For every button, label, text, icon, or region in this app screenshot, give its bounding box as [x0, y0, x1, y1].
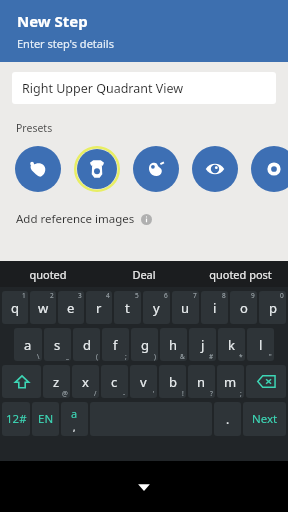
staticText: # — [209, 352, 214, 361]
button[interactable]: s — [44, 328, 71, 361]
staticText: _ — [66, 352, 69, 361]
staticText: New Step — [17, 11, 88, 31]
button[interactable]: Add reference images — [16, 211, 152, 227]
staticText: Deal — [132, 267, 156, 282]
staticText: c — [111, 373, 118, 391]
staticText: f — [113, 336, 118, 354]
button[interactable]: shift — [2, 365, 41, 398]
button[interactable]: j — [189, 328, 216, 361]
button[interactable]: Hide keyboard — [127, 470, 161, 504]
button[interactable]: Preset 1 — [15, 146, 61, 192]
staticText: ' — [153, 389, 155, 398]
staticText: Presets — [16, 121, 53, 135]
button[interactable]: r — [86, 291, 112, 324]
staticText: o — [240, 299, 248, 317]
button[interactable]: n — [188, 365, 215, 398]
button[interactable]: period — [214, 402, 241, 436]
staticText: - — [123, 389, 126, 398]
staticText: EN — [38, 411, 54, 427]
staticText: ? — [210, 389, 213, 398]
button[interactable]: u — [172, 291, 199, 324]
button[interactable]: h — [160, 328, 187, 361]
staticText: quoted post — [209, 267, 272, 282]
staticText: 4 — [106, 291, 110, 300]
staticText: , — [73, 421, 76, 433]
button[interactable]: EN — [32, 402, 59, 436]
staticText: l — [259, 336, 263, 354]
staticText: m — [224, 373, 237, 391]
button[interactable]: y — [143, 291, 170, 324]
staticText: Right Upper Quadrant View — [22, 80, 184, 97]
staticText: Enter step's details — [17, 36, 114, 51]
staticText: ; — [125, 352, 127, 361]
button[interactable]: g — [131, 328, 158, 361]
staticText: 9 — [251, 291, 255, 300]
staticText: / — [94, 389, 97, 398]
staticText: y — [153, 299, 160, 317]
staticText: z — [53, 373, 60, 391]
staticText: ) — [154, 352, 156, 361]
staticText: k — [228, 336, 235, 354]
staticText: t — [125, 299, 130, 317]
staticText: " — [269, 352, 272, 361]
button[interactable]: Preset 4 — [192, 146, 238, 192]
staticText: ( — [96, 352, 98, 361]
staticText: 7 — [193, 291, 197, 300]
staticText: & — [180, 352, 185, 361]
button[interactable]: Preset 3 — [133, 146, 179, 192]
staticText: 3 — [78, 291, 82, 300]
staticText: u — [181, 299, 190, 317]
button[interactable]: quoted post — [192, 261, 288, 287]
button[interactable]: i — [201, 291, 228, 324]
button[interactable]: e — [58, 291, 84, 324]
button[interactable]: Right Upper Quadrant View — [12, 72, 276, 104]
button[interactable]: l — [247, 328, 274, 361]
button[interactable]: Next — [243, 402, 286, 436]
staticText: i — [213, 299, 217, 317]
button[interactable]: f — [102, 328, 129, 361]
button[interactable]: q — [2, 291, 28, 324]
staticText: v — [140, 373, 147, 391]
button[interactable]: m — [217, 365, 244, 398]
button[interactable]: o — [230, 291, 257, 324]
staticText: q — [11, 299, 19, 317]
staticText: 2 — [50, 291, 54, 300]
button[interactable]: Preset 2 — [74, 146, 120, 192]
staticText: * — [239, 352, 243, 361]
button[interactable]: k — [218, 328, 245, 361]
button[interactable]: c — [101, 365, 128, 398]
staticText: w — [38, 299, 49, 317]
button[interactable]: comma — [61, 402, 88, 436]
staticText: a — [24, 336, 32, 354]
button[interactable]: quoted — [0, 261, 96, 287]
staticText: ; — [240, 389, 242, 398]
staticText: 0 — [280, 291, 284, 300]
staticText: g — [141, 336, 149, 354]
button[interactable]: Preset 5 — [251, 146, 288, 192]
button[interactable]: d — [73, 328, 100, 361]
staticText: 12# — [6, 411, 27, 427]
button[interactable]: w — [30, 291, 56, 324]
staticText: s — [54, 336, 61, 354]
button[interactable]: del — [246, 365, 286, 398]
staticText: d — [83, 336, 91, 354]
button[interactable]: x — [72, 365, 99, 398]
button[interactable]: a — [14, 328, 42, 361]
button[interactable]: b — [159, 365, 186, 398]
button[interactable]: Deal — [96, 261, 192, 287]
button[interactable]: z — [43, 365, 70, 398]
button[interactable]: p — [259, 291, 286, 324]
button[interactable]: v — [130, 365, 157, 398]
staticText: 6 — [164, 291, 168, 300]
staticText: e — [67, 299, 75, 317]
staticText: 5 — [135, 291, 139, 300]
staticText: 8 — [222, 291, 226, 300]
button[interactable]: 12# — [2, 402, 30, 436]
staticText: 1 — [22, 291, 26, 300]
staticText: x — [82, 373, 89, 391]
staticText: b — [169, 373, 177, 391]
button[interactable]: t — [114, 291, 141, 324]
staticText: Next — [252, 411, 278, 427]
staticText: @ — [62, 389, 68, 398]
